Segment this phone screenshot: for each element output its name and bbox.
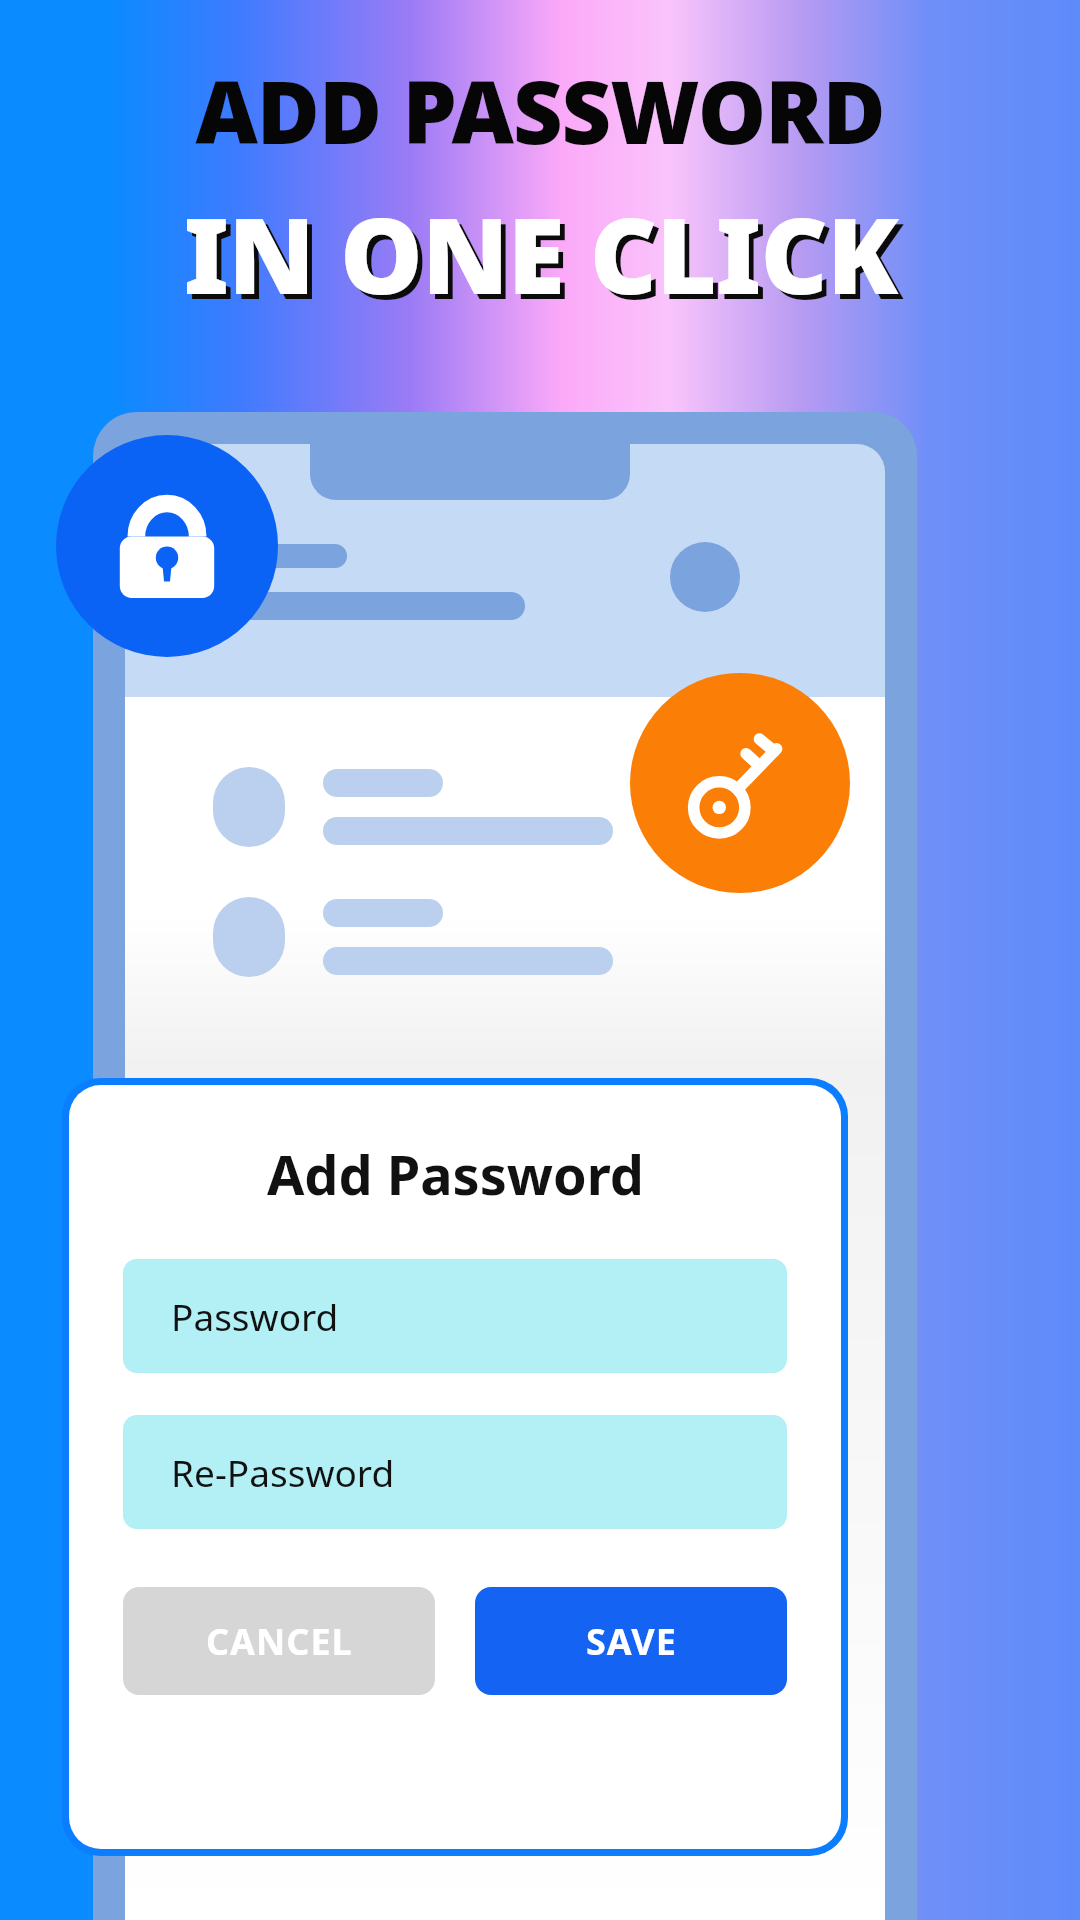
button[interactable]: Re-Password: [123, 1415, 787, 1529]
staticText: ADD PASSWORD: [195, 52, 885, 169]
button[interactable]: CANCEL: [123, 1587, 435, 1695]
staticText: SAVE: [586, 1617, 677, 1666]
staticText: IN ONE CLICK: [188, 188, 903, 330]
button[interactable]: Password: [123, 1259, 787, 1373]
staticText: IN ONE CLICK: [183, 183, 898, 325]
staticText: CANCEL: [206, 1617, 353, 1666]
staticText: Re-Password: [171, 1447, 395, 1497]
button[interactable]: Lock: [56, 435, 278, 657]
button[interactable]: Key: [630, 673, 850, 893]
staticText: Password: [171, 1291, 339, 1341]
staticText: Add Password: [267, 1137, 644, 1211]
button[interactable]: SAVE: [475, 1587, 787, 1695]
